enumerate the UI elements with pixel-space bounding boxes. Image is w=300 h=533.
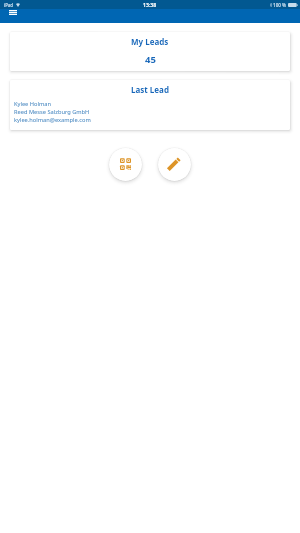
staticText: 100 % — [273, 2, 287, 8]
staticText: My Leads — [131, 36, 169, 47]
staticText: 45 — [145, 53, 156, 66]
button[interactable]: Add lead — [158, 148, 191, 181]
staticText: Reed Messe Salzburg GmbH — [14, 108, 90, 116]
staticText: 13:38 — [143, 1, 157, 8]
button[interactable]: Menu — [4, 9, 22, 22]
staticText: Kylee Holman — [14, 100, 51, 108]
staticText: kylee.holman@example.com — [14, 116, 91, 124]
staticText: Last Lead — [10, 84, 290, 95]
button[interactable]: Scan QR code — [109, 148, 142, 181]
staticText: iPad — [4, 2, 14, 8]
